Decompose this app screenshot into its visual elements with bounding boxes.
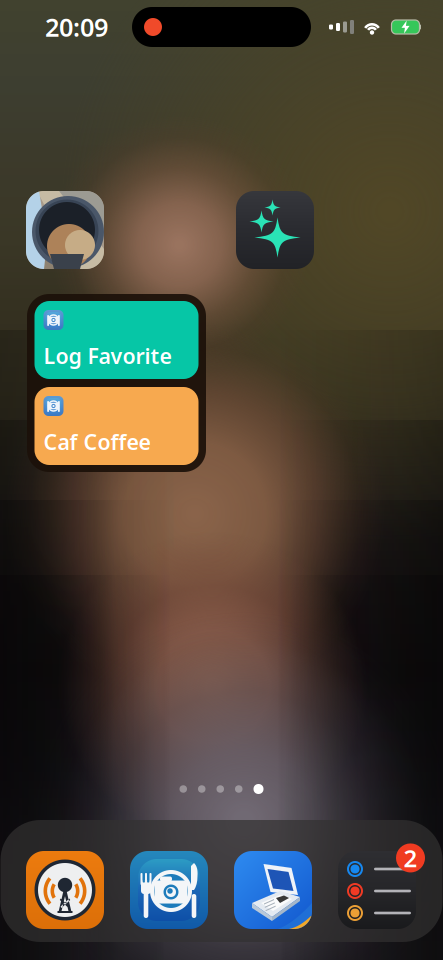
button[interactable]: Reminders: [338, 851, 416, 929]
button[interactable]: Food photo: [130, 851, 208, 929]
staticText: Log Favorite: [43, 342, 171, 370]
button[interactable]: Scanner Pro: [234, 851, 312, 929]
button[interactable]: Sparkles: [236, 191, 314, 269]
button[interactable]: Log Favorite: [34, 301, 198, 379]
button[interactable]: Coffee photo: [26, 191, 104, 269]
staticText: Caf Coffee: [43, 428, 150, 456]
button[interactable]: Caf Coffee: [34, 387, 198, 465]
staticText: 2: [403, 842, 417, 874]
staticText: 20:09: [45, 10, 108, 44]
button[interactable]: Overcast: [26, 851, 104, 929]
